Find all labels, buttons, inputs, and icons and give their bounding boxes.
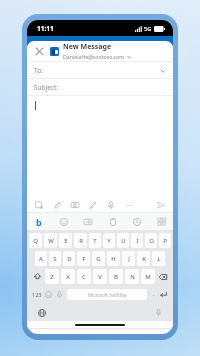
button[interactable]: Close: [32, 44, 46, 58]
button[interactable]: R: [74, 233, 87, 248]
staticText: P: [163, 237, 167, 245]
button[interactable]: [27, 96, 173, 196]
button[interactable]: Y: [103, 233, 115, 248]
staticText: Z: [50, 273, 54, 281]
button[interactable]: J: [122, 251, 135, 266]
button[interactable]: Period: [150, 287, 157, 301]
button[interactable]: Backspace: [155, 269, 171, 284]
staticText: b: [36, 216, 42, 227]
button[interactable]: B: [109, 269, 123, 284]
staticText: Subject:: [34, 83, 59, 92]
button[interactable]: V: [93, 269, 107, 284]
staticText: C: [82, 273, 86, 281]
button[interactable]: Attach file: [33, 199, 44, 210]
staticText: B: [114, 273, 118, 281]
button[interactable]: Q: [29, 233, 42, 248]
staticText: T: [93, 237, 97, 245]
staticText: Microsoft SwiftKey: [88, 292, 127, 298]
staticText: U: [121, 237, 126, 245]
button[interactable]: E: [59, 233, 72, 248]
staticText: R: [79, 237, 83, 245]
button[interactable]: S: [49, 251, 61, 266]
staticText: M: [145, 273, 151, 281]
staticText: L: [157, 255, 161, 263]
staticText: O: [149, 237, 154, 245]
staticText: 5G: [144, 25, 152, 32]
staticText: Y: [107, 237, 111, 245]
button[interactable]: Recent: [131, 216, 142, 227]
staticText: G: [96, 255, 101, 263]
staticText: F: [82, 255, 86, 263]
button[interactable]: More options: [123, 199, 134, 210]
button[interactable]: Clipboard: [107, 216, 118, 227]
button[interactable]: Emoji: [58, 216, 69, 227]
staticText: 11:11: [37, 24, 54, 33]
staticText: X: [66, 273, 70, 281]
staticText: I: [136, 237, 139, 245]
button[interactable]: Camera: [69, 199, 80, 210]
button[interactable]: I: [131, 233, 143, 248]
button[interactable]: Subject:: [27, 79, 173, 96]
button[interactable]: Bing: [33, 216, 44, 227]
staticText: 123: [32, 291, 42, 298]
button[interactable]: Microsoft SwiftKey: [67, 289, 147, 300]
button[interactable]: X: [61, 269, 75, 284]
button[interactable]: F: [77, 251, 90, 266]
button[interactable]: H: [107, 251, 120, 266]
button[interactable]: M: [141, 269, 155, 284]
button[interactable]: O: [145, 233, 157, 248]
button[interactable]: U: [117, 233, 129, 248]
button[interactable]: W: [44, 233, 57, 248]
button[interactable]: Send: [155, 199, 166, 210]
button[interactable]: Settings: [156, 216, 167, 227]
staticText: D: [67, 255, 72, 263]
button[interactable]: Numbers: [30, 287, 44, 301]
button[interactable]: Voice input: [55, 290, 64, 299]
button[interactable]: D: [63, 251, 75, 266]
button[interactable]: G: [92, 251, 105, 266]
staticText: J: [128, 255, 130, 263]
button[interactable]: Z: [45, 269, 59, 284]
staticText: .: [153, 290, 155, 298]
button[interactable]: Draw: [87, 199, 98, 210]
button[interactable]: Voice: [153, 307, 164, 318]
button[interactable]: C: [77, 269, 91, 284]
staticText: W: [48, 237, 54, 245]
button[interactable]: Enter: [157, 287, 170, 301]
button[interactable]: Dictate: [105, 199, 116, 210]
button[interactable]: Attach: [51, 199, 62, 210]
staticText: E: [64, 237, 68, 245]
button[interactable]: GIF: [82, 216, 93, 227]
staticText: V: [98, 273, 102, 281]
staticText: H: [111, 255, 116, 263]
button[interactable]: P: [159, 233, 171, 248]
staticText: K: [142, 255, 146, 263]
staticText: New Message: [63, 42, 112, 52]
button[interactable]: L: [152, 251, 165, 266]
staticText: DanielaHe@contoso.com: [63, 53, 125, 60]
staticText: S: [53, 255, 57, 263]
button[interactable]: A: [35, 251, 47, 266]
staticText: A: [39, 255, 43, 263]
staticText: To:: [34, 66, 43, 75]
button[interactable]: To:: [27, 62, 173, 79]
button[interactable]: Shift: [29, 269, 45, 284]
button[interactable]: Language: [36, 307, 47, 318]
button[interactable]: T: [89, 233, 101, 248]
button[interactable]: N: [125, 269, 139, 284]
staticText: N: [130, 273, 135, 281]
staticText: Q: [33, 237, 38, 245]
button[interactable]: K: [137, 251, 150, 266]
button[interactable]: Emoji: [44, 290, 53, 299]
